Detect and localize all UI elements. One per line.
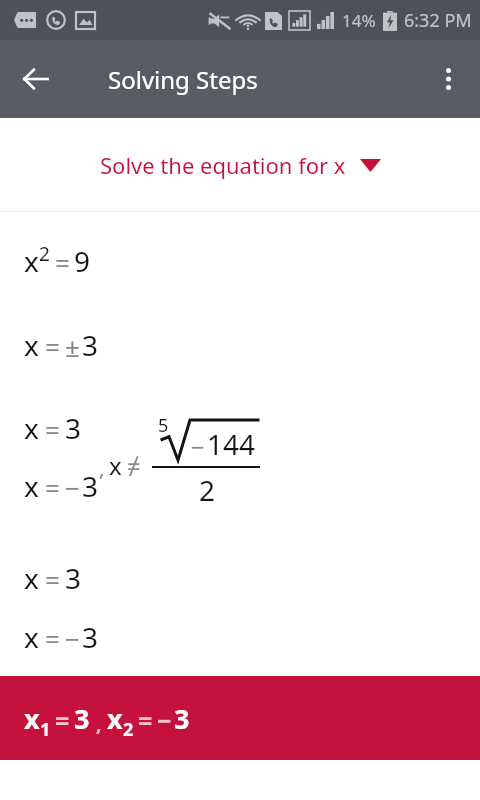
staticText: Solving Steps bbox=[108, 63, 258, 96]
staticText: x bbox=[24, 618, 39, 656]
staticText: = bbox=[55, 245, 70, 280]
staticText: − bbox=[157, 703, 172, 737]
staticText: = bbox=[55, 703, 70, 737]
staticText: x bbox=[24, 467, 39, 505]
button[interactable]: Back bbox=[8, 51, 64, 107]
staticText: 3 bbox=[82, 618, 99, 656]
staticText: x bbox=[107, 700, 123, 737]
staticText: 2 bbox=[39, 241, 50, 267]
staticText: = bbox=[45, 329, 60, 364]
staticText: x bbox=[24, 242, 39, 280]
staticText: , bbox=[99, 455, 105, 482]
staticText: = bbox=[45, 562, 60, 597]
staticText: 6:32 PM bbox=[404, 8, 472, 33]
staticText: , bbox=[96, 711, 102, 737]
staticText: = bbox=[45, 621, 60, 656]
staticText: 3 bbox=[82, 467, 99, 505]
staticText: 144 bbox=[207, 425, 256, 463]
staticText: 2 bbox=[123, 717, 134, 742]
staticText: 3 bbox=[74, 700, 90, 737]
button[interactable]: Solve the equation for x bbox=[0, 118, 480, 211]
staticText: x bbox=[24, 326, 39, 364]
staticText: − bbox=[65, 621, 80, 656]
staticText: x bbox=[24, 409, 39, 447]
staticText: = bbox=[138, 703, 153, 737]
staticText: 3 bbox=[65, 409, 82, 447]
staticText: x bbox=[109, 449, 122, 482]
staticText: ± bbox=[65, 329, 80, 364]
staticText: 2 bbox=[199, 471, 216, 509]
staticText: Solve the equation for x bbox=[100, 150, 346, 180]
staticText: 3 bbox=[65, 559, 82, 597]
staticText: 3 bbox=[82, 326, 99, 364]
staticText: 1 bbox=[40, 717, 51, 742]
staticText: = bbox=[45, 412, 60, 447]
staticText: 5 bbox=[158, 413, 169, 438]
button[interactable]: x bbox=[0, 676, 480, 760]
staticText: = bbox=[45, 470, 60, 505]
staticText: − bbox=[191, 430, 205, 463]
staticText: 3 bbox=[174, 700, 190, 737]
staticText: 9 bbox=[74, 242, 91, 280]
staticText: ≠ bbox=[127, 449, 141, 482]
staticText: x bbox=[24, 559, 39, 597]
button[interactable]: More options bbox=[422, 53, 474, 105]
staticText: x bbox=[24, 700, 40, 737]
staticText: − bbox=[65, 470, 80, 505]
staticText: 14% bbox=[342, 9, 376, 32]
